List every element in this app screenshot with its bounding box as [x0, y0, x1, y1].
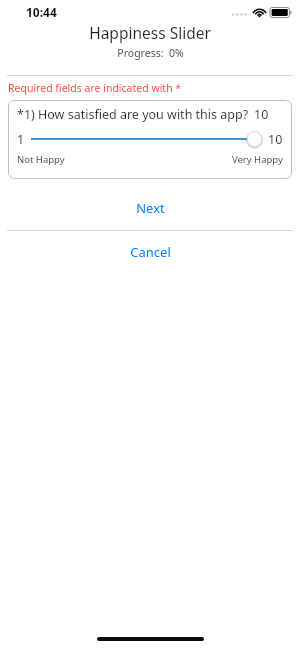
- staticText: Not Happy: [17, 153, 65, 166]
- staticText: Cancel: [130, 243, 171, 261]
- staticText: Very Happy: [232, 153, 283, 166]
- staticText: Happiness Slider: [89, 22, 211, 43]
- button[interactable]: Happiness slider: [31, 128, 262, 150]
- staticText: 10:44: [26, 4, 57, 20]
- staticText: Progress: 0%: [117, 46, 184, 60]
- staticText: *1) How satisfied are you with this app?: [17, 106, 249, 123]
- button[interactable]: Next: [0, 197, 300, 219]
- button[interactable]: *1) How satisfied are you with this app?: [8, 100, 292, 179]
- staticText: Required fields are indicated with *: [8, 81, 182, 95]
- staticText: 1: [17, 131, 25, 148]
- staticText: 10: [268, 131, 283, 148]
- staticText: 10: [254, 106, 269, 123]
- staticText: Next: [136, 199, 165, 217]
- button[interactable]: Cancel: [0, 241, 300, 263]
